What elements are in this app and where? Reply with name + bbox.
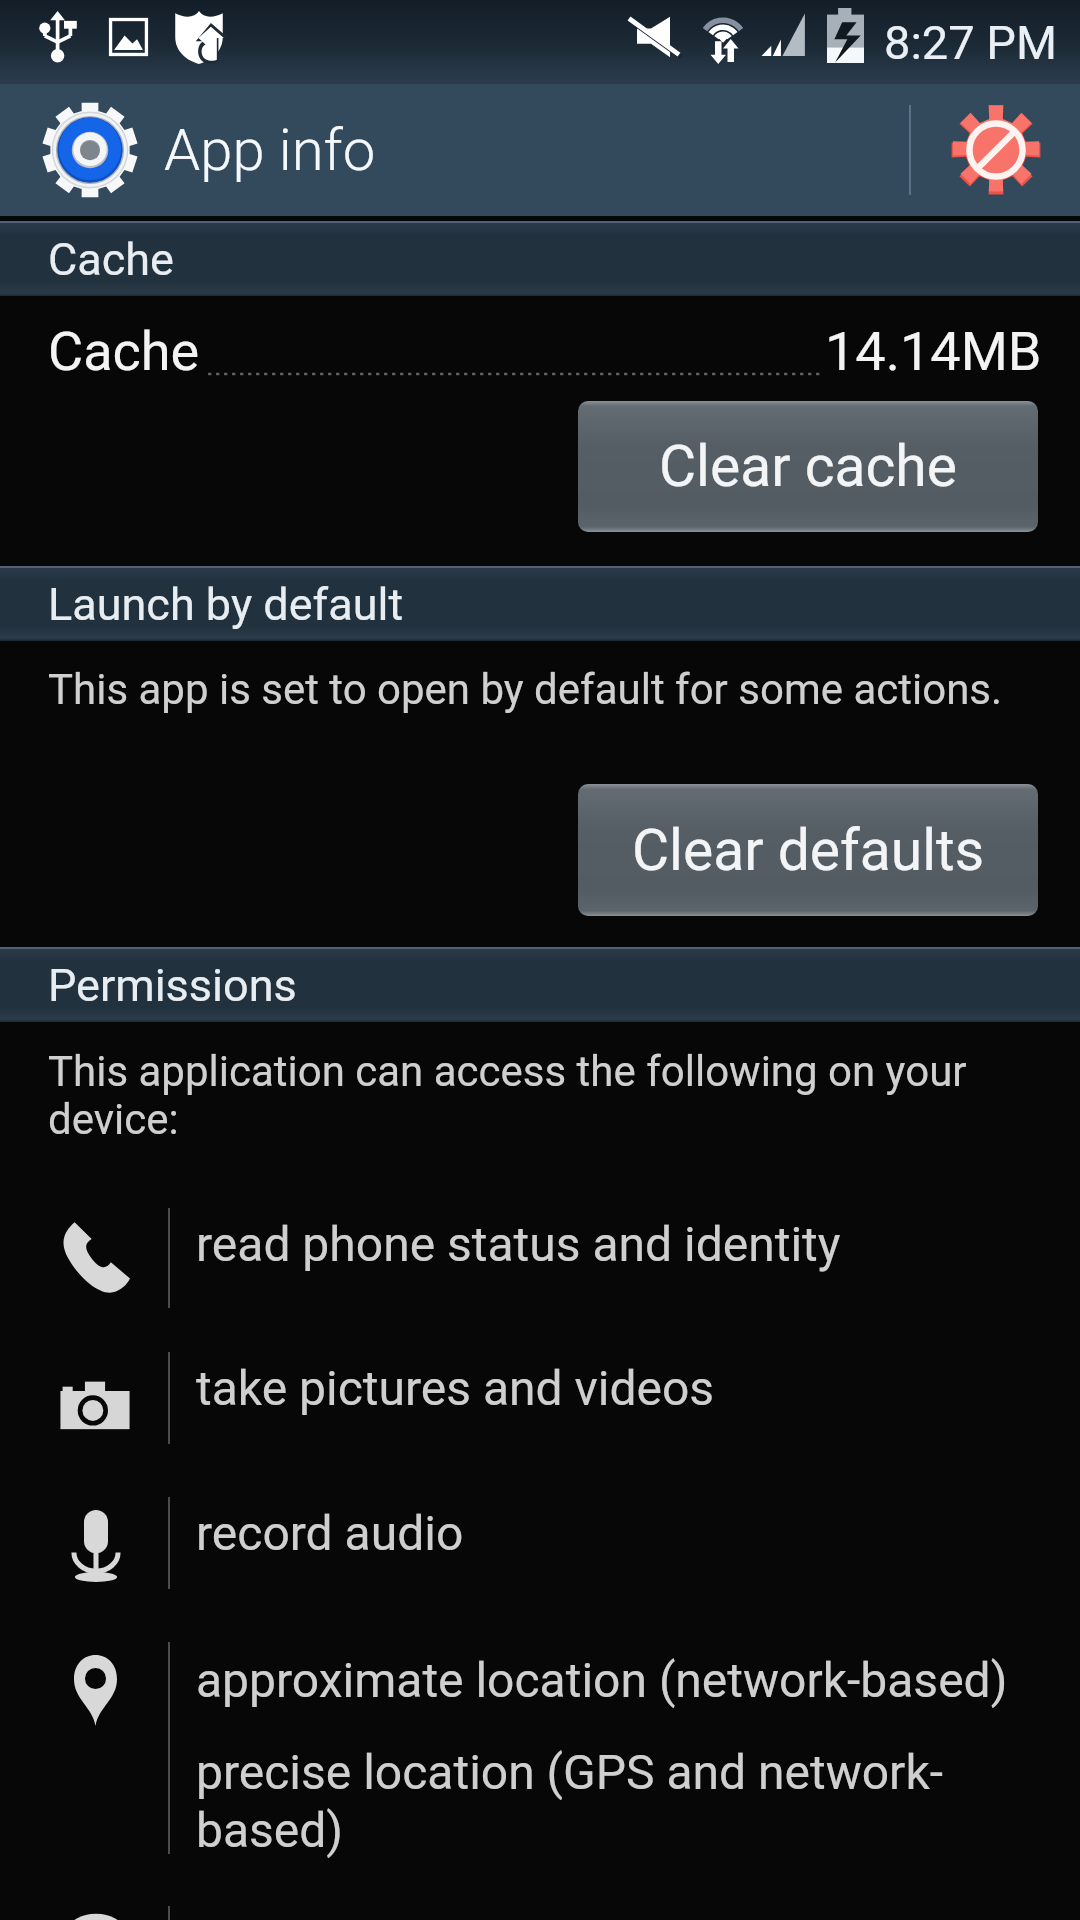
staticText: 14.14MB xyxy=(825,320,1042,383)
staticText: Cache xyxy=(48,233,174,286)
staticText: Launch by default xyxy=(48,578,404,631)
staticText: read phone status and identity xyxy=(196,1216,841,1272)
button[interactable]: App info xyxy=(0,84,864,216)
staticText: precise location (GPS and network- xyxy=(196,1744,943,1800)
staticText: take pictures and videos xyxy=(196,1360,715,1416)
staticText: This app is set to open by default for s… xyxy=(48,665,1003,714)
staticText: Clear cache xyxy=(659,433,957,500)
staticText: App info xyxy=(164,116,376,184)
staticText: 8:27 PM xyxy=(884,15,1057,70)
button[interactable]: approximate location (network-based) xyxy=(0,1640,1080,1900)
button[interactable]: read phone status and identity xyxy=(0,1208,1080,1352)
staticText: Cache xyxy=(48,320,200,383)
button[interactable]: take pictures and videos xyxy=(0,1352,1080,1497)
staticText: record audio xyxy=(196,1505,464,1561)
button[interactable]: Force stop app xyxy=(912,84,1080,216)
staticText: Clear defaults xyxy=(632,817,985,884)
button[interactable] xyxy=(0,1900,1080,1920)
button[interactable]: record audio xyxy=(0,1497,1080,1640)
button[interactable]: Clear cache xyxy=(578,401,1038,532)
staticText: This application can access the followin… xyxy=(48,1047,967,1096)
staticText: Permissions xyxy=(48,959,297,1012)
staticText: device: xyxy=(48,1095,179,1144)
staticText: based) xyxy=(196,1802,344,1858)
staticText: approximate location (network-based) xyxy=(196,1652,1008,1708)
button[interactable]: Clear defaults xyxy=(578,784,1038,916)
